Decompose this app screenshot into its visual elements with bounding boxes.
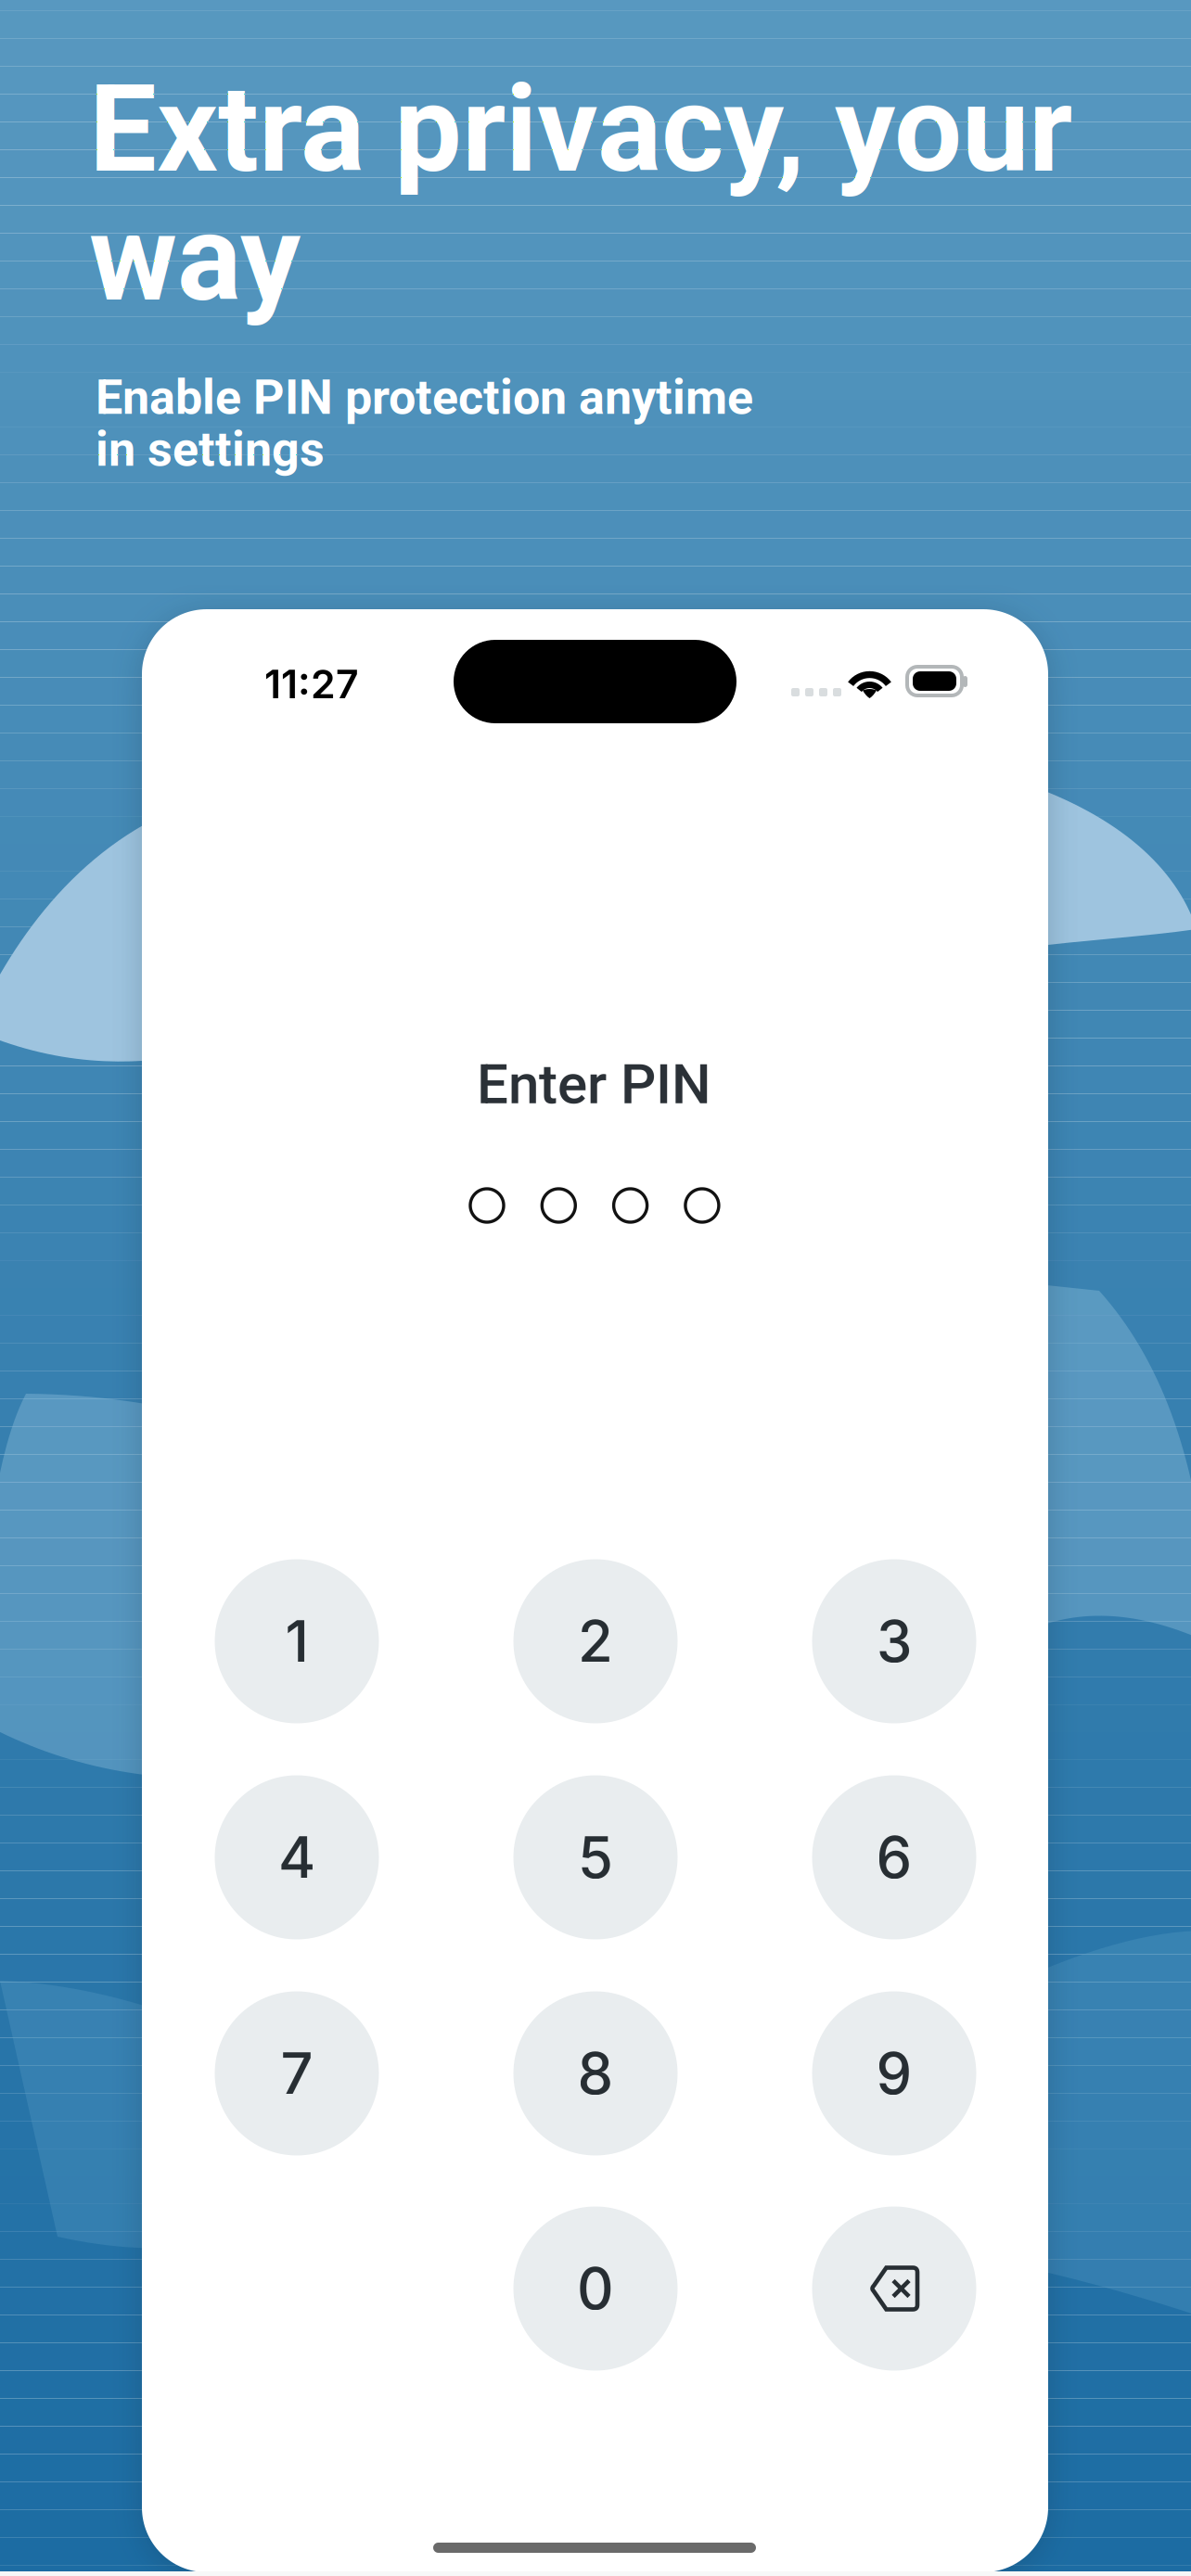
button[interactable]: 1 (215, 1559, 379, 1723)
staticText: 9 (876, 2039, 912, 2108)
button[interactable]: 3 (812, 1559, 976, 1723)
staticText: 8 (577, 2039, 614, 2108)
button[interactable]: 9 (812, 1991, 976, 2155)
staticText: 11:27 (264, 660, 359, 708)
staticText: 1 (285, 1607, 308, 1676)
button[interactable]: Delete (812, 2206, 976, 2371)
staticText: 2 (578, 1607, 613, 1676)
staticText: way (89, 188, 301, 329)
button[interactable]: 8 (513, 1991, 678, 2155)
button[interactable]: 7 (215, 1991, 379, 2155)
staticText: 7 (281, 2039, 313, 2108)
staticText: Extra privacy, your (89, 59, 1072, 200)
staticText: 0 (577, 2254, 614, 2323)
staticText: 6 (876, 1823, 912, 1892)
button[interactable]: 2 (513, 1559, 678, 1723)
staticText: 4 (278, 1823, 315, 1892)
staticText: 5 (578, 1823, 613, 1892)
staticText: Enter PIN (477, 1052, 711, 1117)
button[interactable]: 5 (513, 1775, 678, 1939)
button[interactable]: 0 (513, 2206, 678, 2371)
button[interactable]: 4 (215, 1775, 379, 1939)
button[interactable]: 6 (812, 1775, 976, 1939)
staticText: 3 (877, 1607, 912, 1676)
staticText: Enable PIN protection anytime (96, 369, 753, 426)
staticText: in settings (96, 421, 325, 477)
